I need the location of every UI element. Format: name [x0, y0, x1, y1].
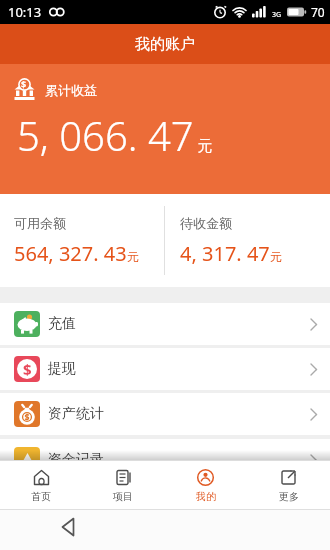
- staticText: 5, 066. 47 元: [17, 108, 213, 162]
- staticText: 提现: [48, 360, 76, 378]
- staticText: 可用余额: [14, 215, 66, 231]
- button[interactable]: $: [0, 348, 330, 390]
- staticText: 充值: [48, 315, 76, 333]
- button[interactable]: 充值: [0, 303, 330, 345]
- staticText: 更多: [279, 490, 299, 503]
- staticText: 我的账户: [135, 35, 195, 54]
- button[interactable]: 更多: [247, 461, 330, 509]
- button[interactable]: 首页: [0, 461, 82, 509]
- button[interactable]: 资金记录: [0, 439, 330, 460]
- staticText: 70: [311, 4, 325, 20]
- staticText: $: [21, 78, 27, 90]
- button[interactable]: 项目: [82, 461, 164, 509]
- staticText: 10:13: [8, 3, 42, 21]
- staticText: 首页: [31, 490, 51, 503]
- staticText: 待收金额: [180, 215, 232, 231]
- button[interactable]: [60, 517, 76, 537]
- button[interactable]: 资产统计: [0, 393, 330, 435]
- button[interactable]: 我的: [164, 461, 247, 509]
- staticText: 项目: [113, 490, 133, 503]
- staticText: $: [23, 359, 32, 379]
- staticText: 564, 327. 43元: [14, 240, 139, 267]
- staticText: 我的: [196, 490, 216, 503]
- staticText: 资产统计: [48, 405, 104, 423]
- staticText: 资金记录: [48, 451, 104, 460]
- staticText: 3G: [272, 10, 282, 20]
- staticText: 4, 317. 47元: [180, 240, 282, 267]
- staticText: 累计收益: [45, 82, 97, 98]
